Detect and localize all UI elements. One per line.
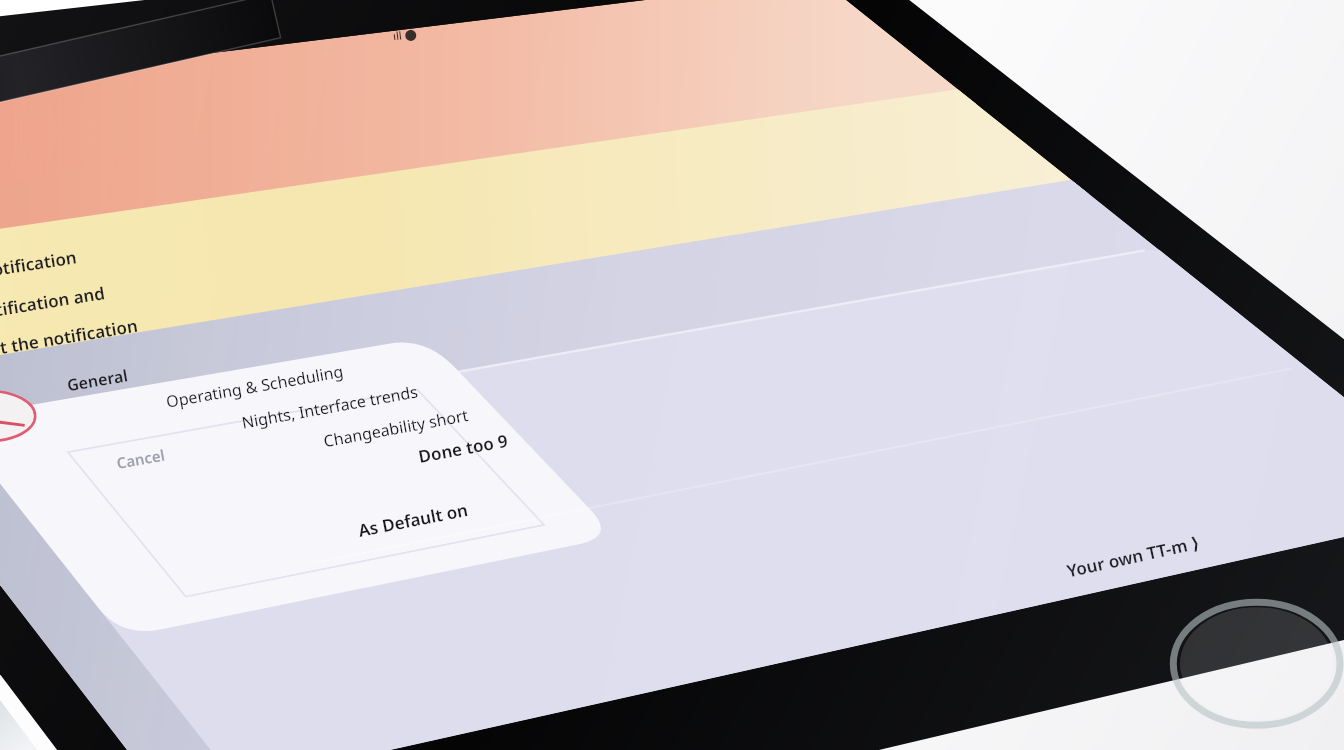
button[interactable]: Phone showing notification settings scre…	[0, 0, 1344, 750]
